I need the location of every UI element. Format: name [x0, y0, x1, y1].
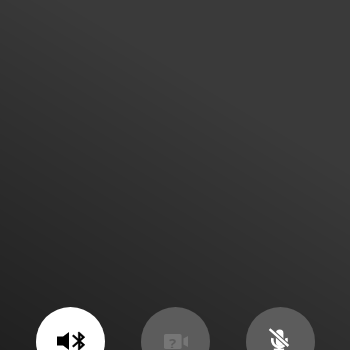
button[interactable]: Mute microphone: [246, 307, 315, 350]
button[interactable]: Video call: [141, 307, 210, 350]
button[interactable]: Speaker, Bluetooth: [36, 307, 105, 350]
staticText: ?: [169, 333, 177, 348]
